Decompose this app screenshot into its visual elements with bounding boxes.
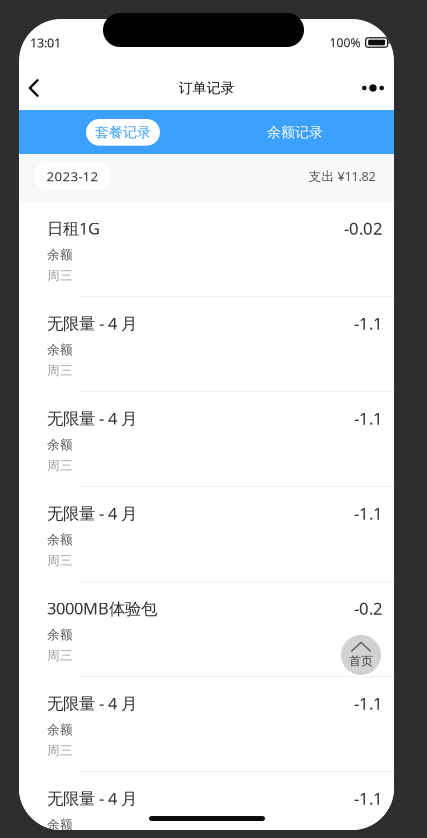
button[interactable]: More options	[352, 66, 394, 110]
staticText: -0.2	[354, 597, 383, 620]
staticText: 无限量 - 4 月	[47, 312, 137, 334]
staticText: 周三	[47, 743, 73, 759]
staticText: 周三	[47, 268, 73, 284]
staticText: 余额	[47, 722, 73, 738]
staticText: 日租1G	[47, 217, 100, 239]
button[interactable]: 无限量 - 4 月	[19, 677, 394, 772]
staticText: 2023-12	[46, 167, 98, 185]
button[interactable]: 无限量 - 4 月	[19, 392, 394, 487]
button[interactable]: 日租1G	[19, 202, 394, 297]
button[interactable]: 首页	[341, 635, 381, 675]
staticText: 无限量 - 4 月	[47, 407, 137, 429]
staticText: 余额	[47, 532, 73, 548]
button[interactable]: 余额记录	[258, 119, 332, 146]
staticText: 支出 ¥11.82	[308, 167, 375, 185]
staticText: -1.1	[354, 407, 383, 430]
button[interactable]: 无限量 - 4 月	[19, 772, 394, 838]
staticText: 3000MB体验包	[47, 597, 157, 619]
staticText: -1.1	[354, 312, 383, 335]
staticText: -1.1	[354, 787, 383, 810]
staticText: 余额记录	[267, 123, 323, 141]
staticText: 100%	[329, 34, 360, 51]
button[interactable]: 3000MB体验包	[19, 582, 394, 677]
staticText: 13:01	[30, 34, 61, 51]
staticText: 订单记录	[178, 79, 234, 97]
button[interactable]: 无限量 - 4 月	[19, 297, 394, 392]
staticText: 首页	[349, 653, 373, 668]
staticText: 套餐记录	[95, 123, 151, 141]
staticText: 余额	[47, 437, 73, 453]
staticText: 周三	[47, 458, 73, 474]
staticText: 余额	[47, 342, 73, 358]
staticText: 周三	[47, 553, 73, 569]
button[interactable]: 套餐记录	[86, 119, 160, 146]
staticText: -0.02	[344, 217, 383, 240]
staticText: 无限量 - 4 月	[47, 502, 137, 524]
button[interactable]: 无限量 - 4 月	[19, 487, 394, 582]
staticText: 无限量 - 4 月	[47, 692, 137, 714]
staticText: 余额	[47, 817, 73, 833]
staticText: 周三	[47, 363, 73, 379]
staticText: -1.1	[354, 692, 383, 715]
staticText: 周三	[47, 648, 73, 664]
button[interactable]: Back	[17, 66, 51, 110]
staticText: 余额	[47, 247, 73, 263]
staticText: 余额	[47, 627, 73, 643]
staticText: -1.1	[354, 502, 383, 525]
staticText: 无限量 - 4 月	[47, 787, 137, 809]
